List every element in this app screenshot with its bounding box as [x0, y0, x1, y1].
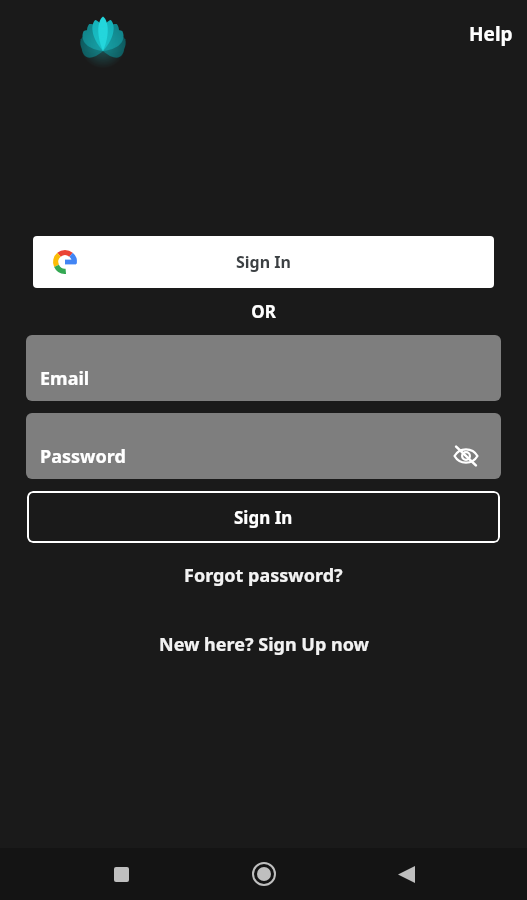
button[interactable]: Toggle password visibility: [449, 439, 483, 473]
button[interactable]: Help: [455, 18, 527, 50]
staticText: Forgot password?: [184, 563, 343, 588]
button[interactable]: Logo: [63, 12, 143, 54]
staticText: Email: [40, 366, 90, 391]
button[interactable]: New here? Sign Up now: [143, 628, 385, 661]
button[interactable]: Back: [384, 852, 428, 896]
staticText: Help: [469, 21, 513, 47]
button[interactable]: Password: [26, 413, 501, 479]
button[interactable]: Email: [26, 335, 501, 401]
button[interactable]: Forgot password?: [168, 559, 359, 592]
button[interactable]: Recents: [99, 852, 143, 896]
staticText: Sign In: [234, 506, 293, 529]
staticText: OR: [0, 300, 527, 323]
button[interactable]: Home: [242, 852, 286, 896]
staticText: Password: [40, 444, 126, 469]
staticText: New here? Sign Up now: [159, 632, 369, 657]
button[interactable]: Sign In: [33, 236, 494, 288]
staticText: Sign In: [236, 251, 291, 273]
button[interactable]: Sign In: [27, 491, 500, 543]
